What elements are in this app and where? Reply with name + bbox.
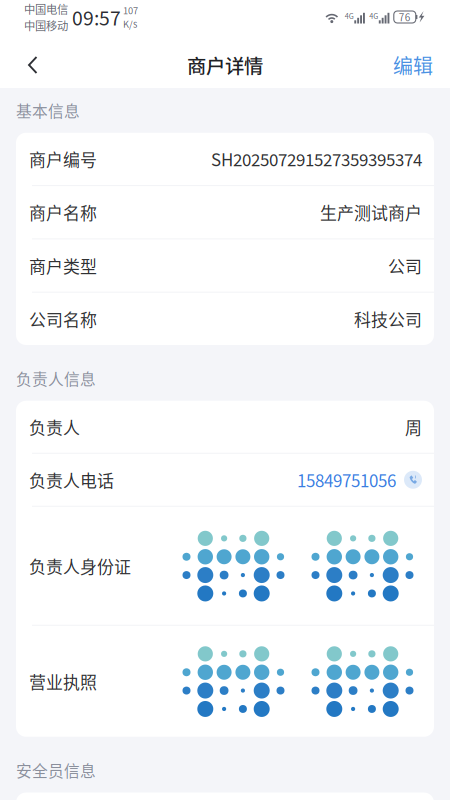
staticText: 公司	[388, 253, 422, 278]
button[interactable]: 负责人身份证 back	[293, 526, 422, 605]
staticText: 负责人信息	[16, 367, 96, 390]
staticText: 中国电信	[24, 1, 68, 17]
staticText: 商户类型	[29, 253, 97, 278]
staticText: 4G	[369, 10, 378, 21]
staticText: 商户详情	[187, 51, 263, 79]
staticText: SH202507291527359395374	[211, 147, 422, 171]
staticText: 生产测试商户	[320, 200, 422, 224]
staticText: 负责人电话	[29, 467, 114, 492]
staticText: 107	[123, 3, 138, 17]
staticText: 安全员信息	[16, 759, 96, 782]
button[interactable]: Back	[0, 42, 51, 87]
staticText: K/s	[123, 17, 137, 30]
staticText: 编辑	[393, 50, 433, 79]
button[interactable]: 负责人身份证 front	[177, 526, 293, 605]
staticText: 科技公司	[354, 307, 422, 331]
button[interactable]: 编辑	[381, 37, 450, 92]
staticText: 商户名称	[29, 200, 97, 224]
staticText: 营业执照	[29, 669, 97, 693]
staticText: 公司名称	[29, 307, 97, 331]
staticText: 4G	[345, 10, 354, 21]
staticText: 商户编号	[29, 147, 97, 171]
button[interactable]: 营业执照 front	[177, 642, 293, 721]
staticText: 负责人身份证	[29, 553, 131, 578]
staticText: 中国移动	[24, 17, 68, 33]
staticText: 周	[405, 414, 422, 439]
staticText: 15849751056	[297, 467, 396, 492]
staticText: 09:57	[68, 3, 121, 31]
staticText: 负责人	[29, 414, 80, 439]
staticText: 76	[399, 10, 411, 24]
button[interactable]: Call 15849751056	[297, 453, 422, 506]
button[interactable]: 营业执照 back	[293, 642, 422, 721]
staticText: 基本信息	[16, 99, 80, 122]
